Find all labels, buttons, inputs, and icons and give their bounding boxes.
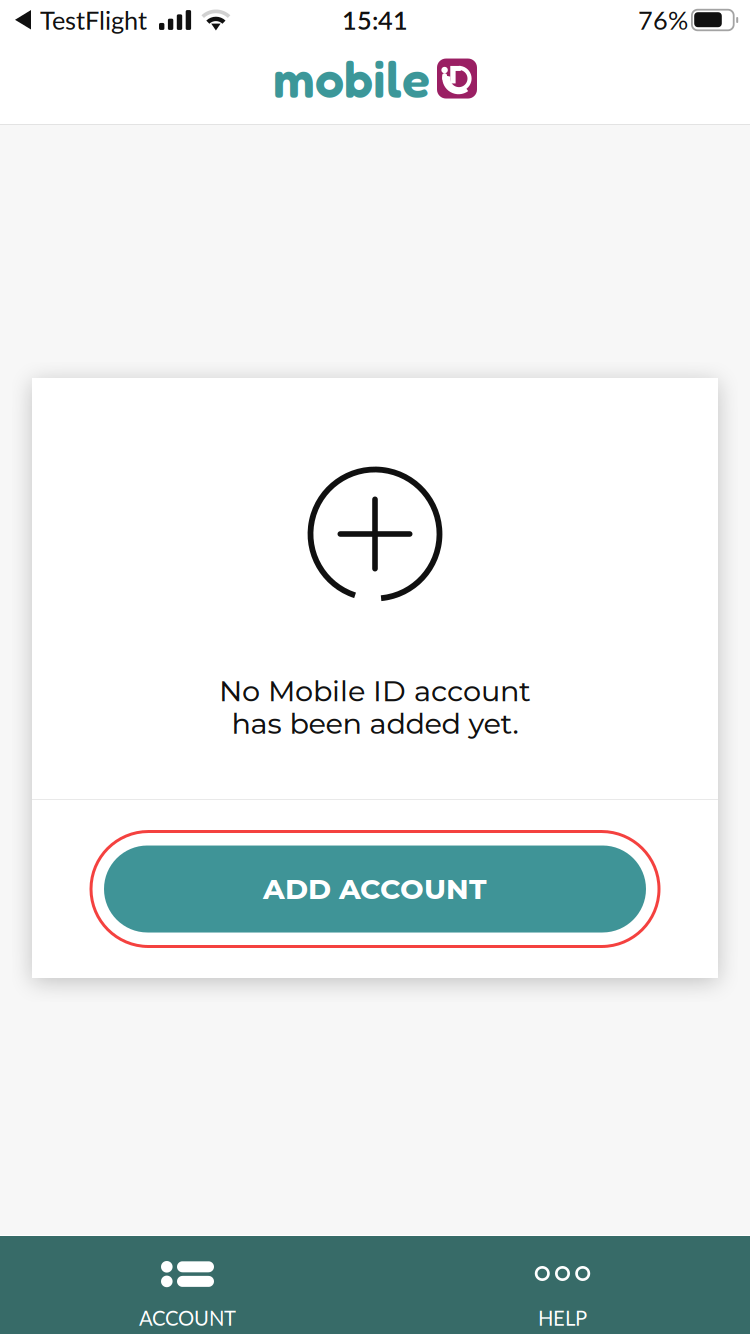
staticText: 15:41 [342,5,408,35]
staticText: No Mobile ID account [219,674,531,708]
staticText: has been added yet. [231,706,518,741]
staticText: 76% [638,5,688,35]
staticText: TestFlight [40,5,147,35]
staticText: ADD ACCOUNT [263,872,487,906]
button[interactable]: HELP [375,1236,750,1334]
staticText: mobile [273,47,430,110]
button[interactable]: ADD ACCOUNT [32,800,718,978]
button[interactable]: ACCOUNT [0,1236,375,1334]
staticText: HELP [538,1306,587,1330]
staticText: ACCOUNT [139,1306,236,1330]
